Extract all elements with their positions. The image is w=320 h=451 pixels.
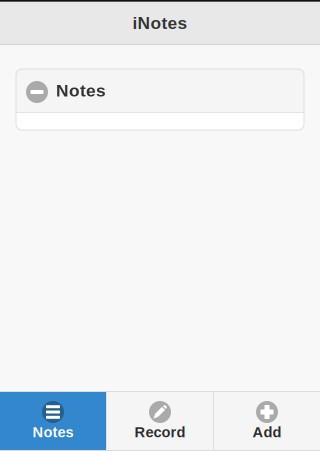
staticText: Notes	[56, 81, 106, 100]
button[interactable]: Record	[107, 392, 213, 450]
staticText: Record	[134, 424, 185, 440]
button[interactable]: Notes	[0, 392, 106, 450]
button[interactable]: Notes	[16, 69, 304, 112]
staticText: iNotes	[132, 13, 187, 33]
staticText: Add	[252, 424, 281, 440]
button[interactable]: Add	[214, 392, 320, 450]
staticText: Notes	[32, 424, 73, 440]
